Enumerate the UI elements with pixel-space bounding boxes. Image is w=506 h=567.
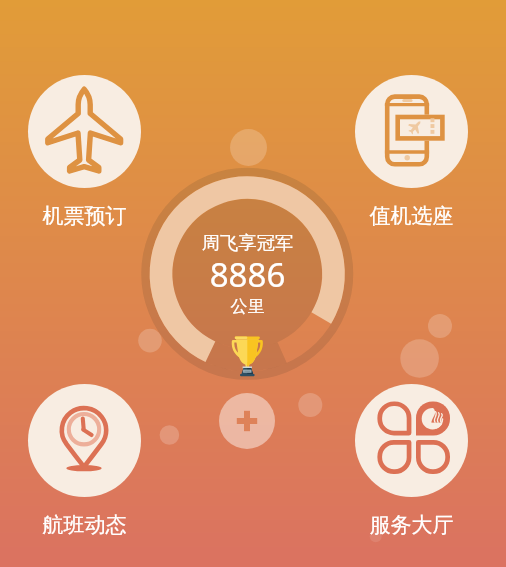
- button[interactable]: 航班动态: [28, 384, 141, 497]
- button[interactable]: 服务大厅: [355, 384, 468, 497]
- button[interactable]: 机票预订: [28, 75, 141, 188]
- button[interactable]: Add: [219, 393, 275, 449]
- staticText: 机票预订: [8, 203, 161, 229]
- staticText: 公里: [177, 296, 318, 317]
- staticText: 航班动态: [8, 512, 161, 538]
- staticText: 服务大厅: [335, 512, 488, 538]
- button[interactable]: 值机选座: [355, 75, 468, 188]
- staticText: 8886: [177, 252, 318, 297]
- staticText: 周飞享冠军: [177, 231, 318, 254]
- staticText: 值机选座: [335, 203, 488, 229]
